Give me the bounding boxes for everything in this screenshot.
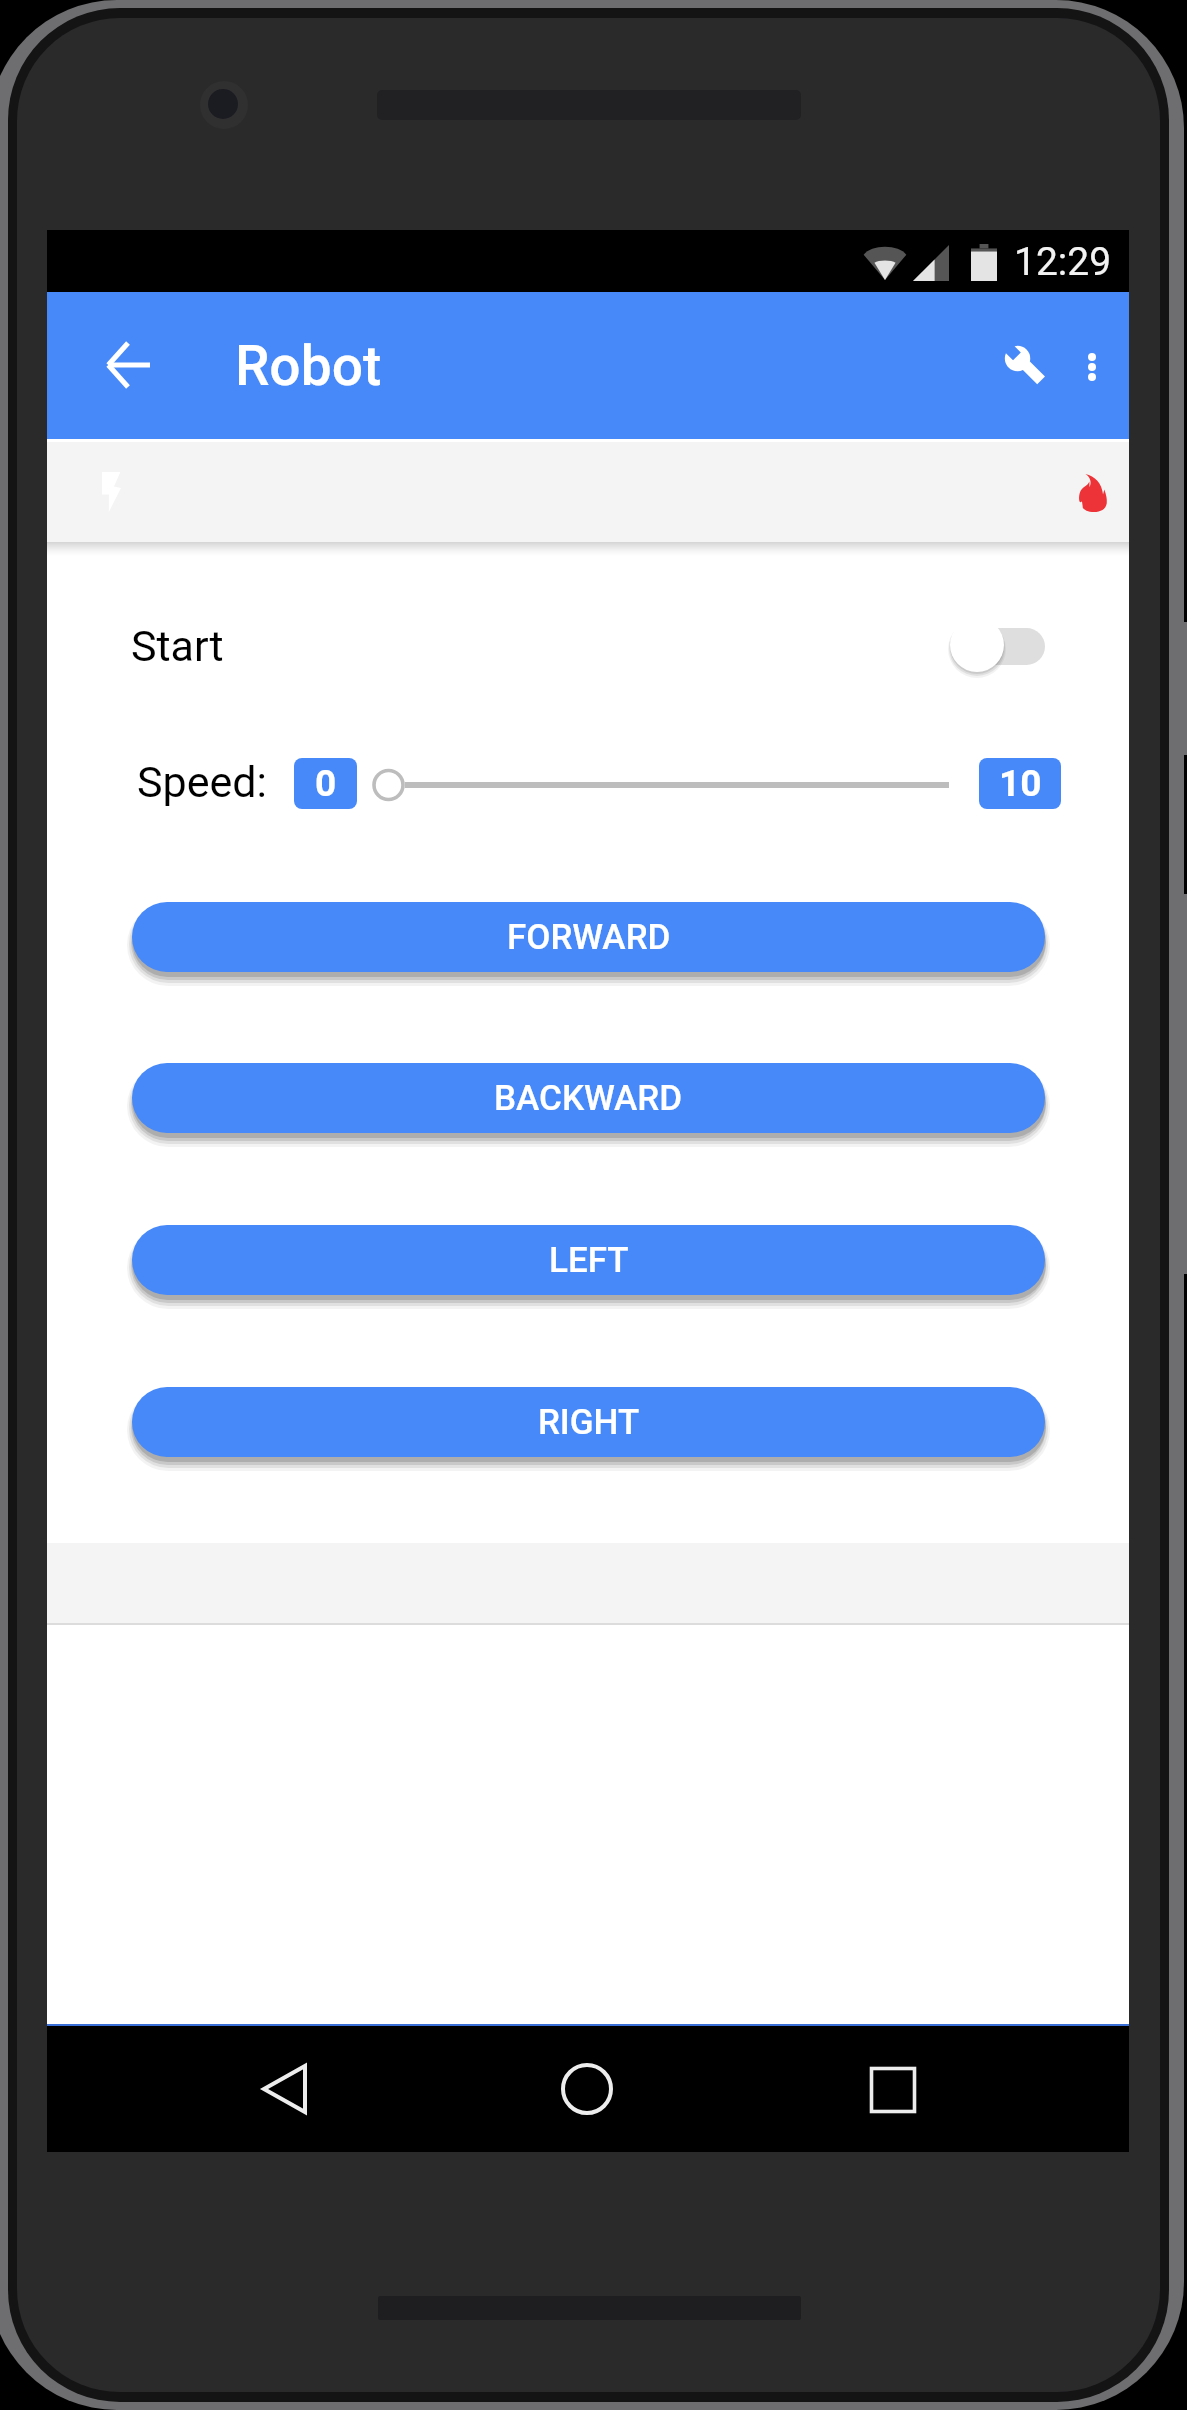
- staticText: 12:29: [1014, 239, 1112, 285]
- button[interactable]: Navigate up: [78, 315, 178, 415]
- button[interactable]: Start: [47, 570, 1129, 720]
- staticText: RIGHT: [538, 1402, 640, 1443]
- button[interactable]: Firebase: [1054, 456, 1130, 528]
- button[interactable]: RIGHT: [132, 1387, 1045, 1457]
- button[interactable]: 0: [294, 758, 357, 809]
- button[interactable]: LEFT: [132, 1225, 1045, 1295]
- staticText: Start: [131, 621, 224, 671]
- button[interactable]: Home: [492, 2028, 682, 2150]
- staticText: Robot: [235, 334, 382, 398]
- button[interactable]: FORWARD: [132, 902, 1045, 972]
- button[interactable]: [948, 615, 1048, 677]
- staticText: BACKWARD: [494, 1078, 683, 1119]
- button[interactable]: BACKWARD: [132, 1063, 1045, 1133]
- staticText: 10: [999, 762, 1042, 805]
- button[interactable]: Back: [189, 2028, 379, 2150]
- staticText: Speed:: [137, 757, 267, 807]
- button[interactable]: Settings: [974, 315, 1074, 415]
- staticText: FORWARD: [507, 917, 671, 958]
- button[interactable]: Recent apps: [798, 2029, 988, 2151]
- button[interactable]: More options: [1048, 315, 1136, 415]
- button[interactable]: 10: [979, 758, 1061, 809]
- staticText: 0: [315, 762, 337, 805]
- staticText: LEFT: [549, 1240, 629, 1281]
